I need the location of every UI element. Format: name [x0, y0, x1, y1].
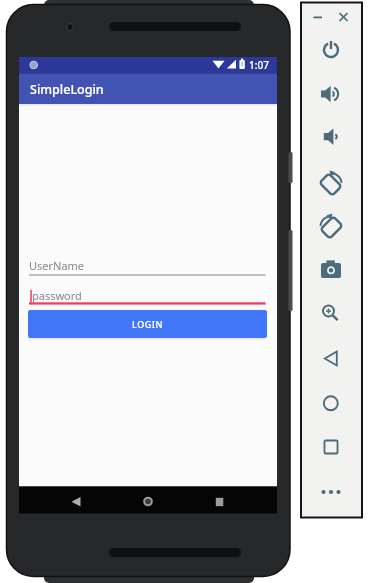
button[interactable]	[318, 123, 344, 149]
button[interactable]	[318, 37, 344, 63]
staticText: LOGIN	[132, 318, 163, 330]
staticText: 1:07	[249, 58, 269, 72]
button[interactable]	[29, 257, 266, 276]
button[interactable]	[318, 215, 344, 241]
button[interactable]	[318, 80, 344, 106]
staticText: password	[32, 288, 82, 303]
button[interactable]	[318, 173, 344, 199]
button[interactable]	[318, 257, 344, 283]
button[interactable]	[318, 479, 344, 505]
staticText: SimpleLogin	[30, 81, 104, 98]
button[interactable]	[29, 284, 266, 305]
button[interactable]	[318, 391, 344, 417]
button[interactable]	[318, 297, 344, 323]
button[interactable]	[318, 345, 344, 371]
button[interactable]: LOGIN	[28, 310, 267, 338]
staticText: UserName	[29, 258, 85, 273]
button[interactable]	[133, 487, 163, 513]
button[interactable]	[203, 487, 233, 513]
button[interactable]	[318, 434, 344, 460]
button[interactable]	[62, 487, 92, 513]
